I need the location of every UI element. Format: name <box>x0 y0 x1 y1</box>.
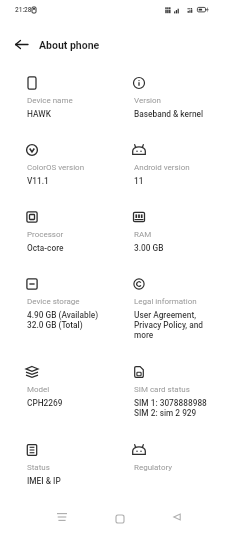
button[interactable]: Recent apps <box>48 503 76 531</box>
staticText: SIM 1: 3078888988 <box>134 398 207 408</box>
button[interactable]: Back <box>11 34 31 54</box>
button[interactable]: Version <box>131 75 231 119</box>
staticText: User Agreement, <box>134 310 196 320</box>
button[interactable]: Regulatory <box>131 442 231 476</box>
button[interactable]: ColorOS version <box>24 142 124 186</box>
staticText: 32.0 GB (Total) <box>27 320 83 330</box>
staticText: RAM <box>134 230 152 239</box>
staticText: Model <box>27 385 50 394</box>
staticText: Device storage <box>27 297 80 306</box>
staticText: 3.00 GB <box>134 243 164 253</box>
button[interactable]: Home <box>106 505 134 533</box>
staticText: ColorOS version <box>27 163 85 172</box>
staticText: Processor <box>27 230 64 239</box>
staticText: Status <box>27 463 50 472</box>
staticText: HAWK <box>27 109 51 119</box>
staticText: CPH2269 <box>27 398 63 408</box>
button[interactable]: Processor <box>24 209 124 253</box>
staticText: 11 <box>134 176 144 186</box>
button[interactable]: Device name <box>24 75 124 119</box>
staticText: Privacy Policy, and <box>134 320 203 330</box>
button[interactable]: Legal information <box>131 276 231 340</box>
staticText: About phone <box>39 39 100 51</box>
staticText: Octa-core <box>27 243 64 253</box>
button[interactable]: Model <box>24 364 124 408</box>
staticText: SIM 2: sim 2 929 <box>134 408 197 418</box>
staticText: Legal information <box>134 297 197 306</box>
staticText: 4.90 GB (Available) <box>27 310 99 320</box>
button[interactable]: Back <box>163 503 191 531</box>
button[interactable]: Device storage <box>24 276 124 330</box>
staticText: V11.1 <box>27 176 49 186</box>
button[interactable]: RAM <box>131 209 231 253</box>
button[interactable]: Android version <box>131 142 231 186</box>
staticText: Version <box>134 96 161 105</box>
staticText: more <box>134 330 154 340</box>
staticText: Android version <box>134 163 190 172</box>
staticText: SIM card status <box>134 385 190 394</box>
staticText: Device name <box>27 96 73 105</box>
staticText: Regulatory <box>134 463 173 472</box>
button[interactable]: Status <box>24 442 124 486</box>
staticText: Baseband & kernel <box>134 109 204 119</box>
staticText: 21:28 <box>15 6 32 14</box>
button[interactable]: SIM card status <box>131 364 231 418</box>
staticText: IMEI & IP <box>27 476 61 486</box>
